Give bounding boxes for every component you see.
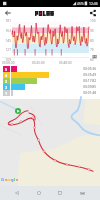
staticText: 5	[5, 67, 8, 72]
staticText: G	[1, 177, 5, 183]
staticText: 181	[0, 19, 11, 23]
staticText: 90	[90, 29, 94, 33]
button[interactable]: Home	[31, 186, 46, 200]
staticText: 163	[0, 29, 11, 33]
staticText: 00:25:00	[32, 61, 45, 65]
button[interactable]: 5	[0, 66, 100, 72]
staticText: 1	[5, 91, 8, 96]
button[interactable]: Back	[9, 186, 24, 200]
staticText: 2	[5, 85, 8, 90]
staticText: 127	[0, 48, 11, 52]
staticText: 109	[0, 58, 11, 62]
staticText: 60	[90, 58, 94, 62]
staticText: l	[14, 177, 16, 183]
staticText: o	[8, 177, 11, 183]
staticText: ▶	[17, 109, 20, 113]
staticText: 00:09:85	[73, 85, 96, 89]
staticText: o	[5, 177, 8, 183]
staticText: 80	[90, 39, 94, 43]
staticText: 46%	[77, 1, 84, 6]
button[interactable]: Recent apps	[52, 186, 67, 200]
staticText: 12:46	[89, 1, 98, 6]
staticText: g	[11, 177, 14, 183]
staticText: 00:48:00	[59, 61, 72, 65]
staticText: 100	[90, 19, 96, 23]
button[interactable]: Route map	[0, 99, 100, 186]
staticText: 00:00:00	[2, 61, 15, 65]
button[interactable]: 4	[0, 72, 100, 78]
staticText: 00:01:48	[73, 91, 96, 95]
button[interactable]: 3	[0, 78, 100, 84]
staticText: 70	[90, 48, 94, 52]
staticText: 00:17:82	[73, 79, 96, 83]
staticText: 3	[5, 79, 8, 84]
button[interactable]: Share	[86, 7, 99, 19]
staticText: e	[16, 177, 19, 183]
button[interactable]: 1	[0, 90, 100, 96]
button[interactable]: Switch keyboard	[75, 186, 90, 200]
button[interactable]: Back	[1, 7, 14, 19]
staticText: 00:35:49	[73, 73, 96, 77]
staticText: 4	[5, 73, 8, 78]
staticText: 145	[0, 39, 11, 43]
staticText: 00:05:36	[73, 67, 96, 71]
button[interactable]: 2	[0, 84, 100, 90]
